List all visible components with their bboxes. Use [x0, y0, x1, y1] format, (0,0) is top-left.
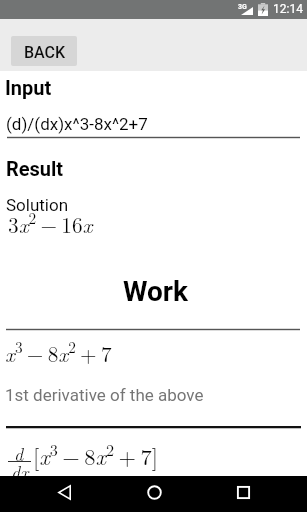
- staticText: 12:14: [273, 2, 303, 16]
- staticText: (d)/(dx)x^3-8x^2+7: [6, 114, 148, 134]
- button[interactable]: Home: [134, 476, 174, 512]
- staticText: 3G: [238, 3, 247, 11]
- staticText: x3 − 8x2 + 7: [5, 336, 112, 368]
- staticText: 1st derivative of the above: [5, 385, 204, 405]
- staticText: Work: [2, 275, 307, 308]
- button[interactable]: BACK: [11, 36, 77, 66]
- button[interactable]: Back: [44, 476, 84, 512]
- staticText: dx: [11, 459, 29, 484]
- staticText: BACK: [24, 43, 66, 62]
- staticText: Solution: [6, 195, 69, 215]
- button[interactable]: Recent apps: [223, 476, 263, 512]
- staticText: d: [14, 441, 24, 466]
- staticText: 3x2 − 16x: [8, 207, 93, 239]
- staticText: Result: [6, 157, 64, 180]
- staticText: [x3 − 8x2 + 7]: [33, 438, 159, 472]
- staticText: Input: [5, 76, 52, 99]
